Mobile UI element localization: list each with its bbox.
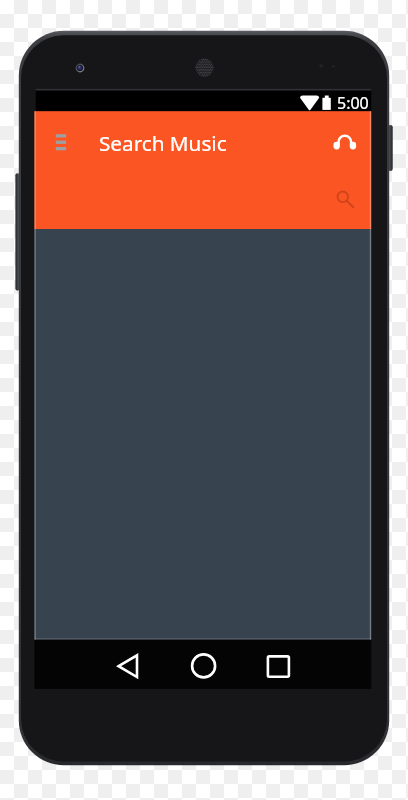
button[interactable] [96,126,242,156]
button[interactable]: Recent apps [256,648,300,684]
button[interactable]: Search [326,181,360,215]
staticText: Search Music [99,129,227,157]
button[interactable]: Back [106,648,150,684]
button[interactable]: Open navigation menu [46,124,80,158]
button[interactable]: Home [182,648,226,684]
staticText: 5:00 [337,92,369,114]
button[interactable]: Now playing headphones [328,126,362,160]
